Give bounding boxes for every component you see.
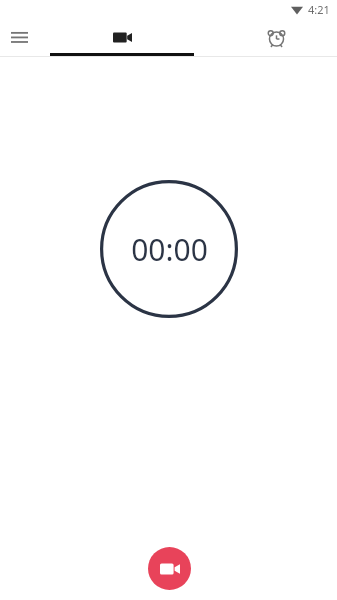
button[interactable]: Start recording bbox=[148, 547, 191, 590]
button[interactable]: Alarms bbox=[216, 18, 337, 56]
staticText: 4:21 bbox=[308, 2, 330, 17]
button[interactable]: Recorder bbox=[50, 18, 194, 56]
staticText: 00:00 bbox=[131, 229, 208, 270]
button[interactable]: Menu bbox=[0, 18, 38, 56]
